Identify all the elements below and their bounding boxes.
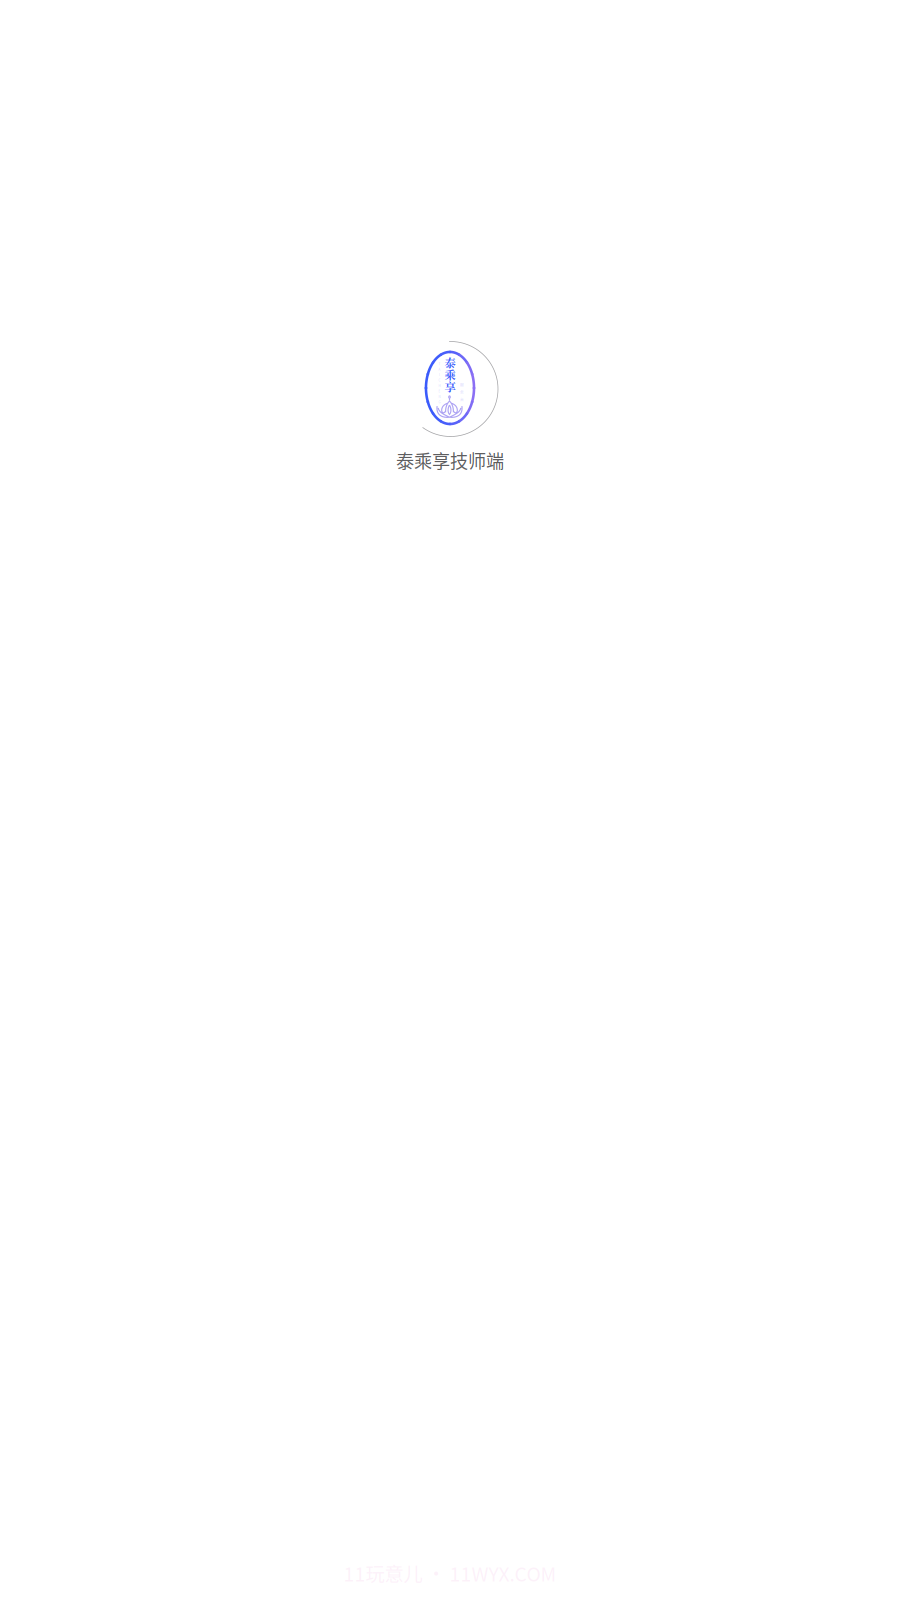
staticText: 泰	[444, 354, 455, 371]
staticText: I	[439, 373, 440, 377]
staticText: C	[438, 378, 440, 382]
staticText: A	[438, 367, 440, 371]
staticText: 享	[444, 378, 455, 395]
staticText: 服	[460, 382, 464, 387]
staticText: 台	[460, 397, 464, 402]
staticText: H	[438, 384, 440, 388]
staticText: T	[438, 362, 440, 366]
staticText: 泰乘享技师端	[396, 447, 504, 473]
staticText: E	[438, 389, 440, 393]
staticText: N	[438, 394, 440, 399]
staticText: G	[438, 400, 440, 404]
staticText: 务	[460, 389, 464, 395]
staticText: 11玩意儿 · 11WYX.COM	[343, 1559, 556, 1587]
staticText: 乘	[444, 366, 455, 383]
